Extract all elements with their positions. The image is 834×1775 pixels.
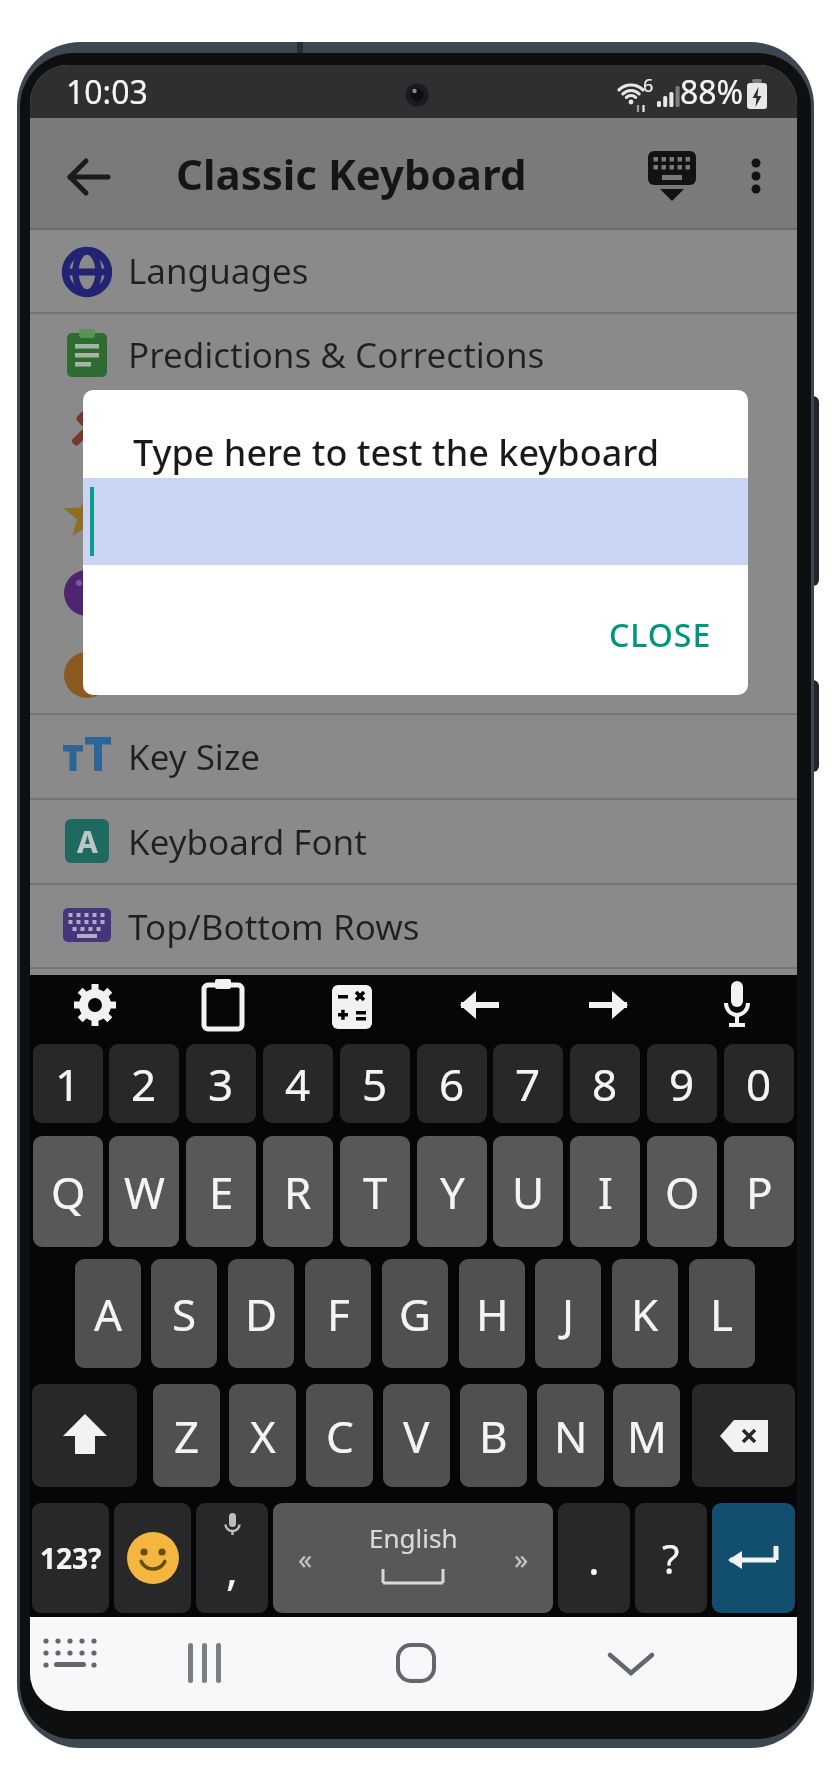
button[interactable]: .	[558, 1503, 630, 1613]
staticText: D	[245, 1284, 278, 1344]
button[interactable]: Y	[417, 1136, 487, 1247]
staticText: R	[284, 1162, 312, 1222]
button[interactable]: 6	[417, 1044, 487, 1123]
button[interactable]: N	[537, 1384, 604, 1487]
button[interactable]: R	[263, 1136, 333, 1247]
staticText: 6	[643, 73, 654, 93]
staticText: 10:03	[66, 70, 148, 114]
staticText: Z	[174, 1406, 200, 1466]
button[interactable]	[380, 1631, 450, 1697]
staticText: Predictions & Corrections	[128, 331, 545, 379]
button[interactable]	[30, 800, 797, 883]
staticText: »	[514, 1539, 529, 1577]
staticText: Key Size	[128, 733, 261, 781]
staticText: O	[665, 1162, 700, 1222]
button[interactable]	[636, 143, 736, 213]
button[interactable]	[32, 1384, 137, 1487]
button[interactable]: G	[382, 1259, 448, 1368]
staticText: T	[363, 1162, 388, 1222]
button[interactable]: CLOSE	[595, 605, 725, 665]
button[interactable]: ,	[196, 1503, 268, 1613]
button[interactable]: 0	[724, 1044, 794, 1123]
staticText: G	[399, 1284, 432, 1344]
button[interactable]	[30, 230, 797, 312]
button[interactable]: 7	[493, 1044, 563, 1123]
button[interactable]	[30, 885, 797, 968]
staticText: English	[369, 1520, 458, 1555]
button[interactable]: E	[186, 1136, 256, 1247]
button[interactable]: V	[383, 1384, 450, 1487]
button[interactable]: T	[340, 1136, 410, 1247]
button[interactable]	[712, 1503, 795, 1613]
button[interactable]: 123?	[32, 1503, 109, 1613]
button[interactable]: 1	[33, 1044, 103, 1123]
staticText: F	[327, 1284, 350, 1344]
button[interactable]: M	[613, 1384, 680, 1487]
button[interactable]	[30, 715, 797, 798]
button[interactable]: A	[75, 1259, 141, 1368]
button[interactable]	[576, 975, 640, 1039]
button[interactable]	[114, 1503, 191, 1613]
button[interactable]	[30, 314, 797, 395]
button[interactable]: W	[109, 1136, 179, 1247]
button[interactable]: U	[493, 1136, 563, 1247]
staticText: X	[250, 1406, 276, 1466]
button[interactable]: H	[459, 1259, 525, 1368]
button[interactable]	[62, 150, 116, 204]
button[interactable]: D	[228, 1259, 294, 1368]
staticText: 4	[285, 1054, 311, 1114]
button[interactable]: Z	[153, 1384, 220, 1487]
button[interactable]	[732, 143, 782, 213]
button[interactable]: 3	[186, 1044, 256, 1123]
staticText: C	[326, 1406, 354, 1466]
button[interactable]: «	[273, 1503, 553, 1613]
staticText: Classic Keyboard	[176, 145, 527, 202]
staticText: Y	[440, 1162, 465, 1222]
button[interactable]: I	[570, 1136, 640, 1247]
staticText: K	[631, 1284, 659, 1344]
staticText: 88%	[680, 70, 744, 114]
staticText: 3	[208, 1054, 234, 1114]
button[interactable]: Q	[33, 1136, 103, 1247]
staticText: 7	[515, 1054, 541, 1114]
button[interactable]	[38, 1631, 108, 1697]
staticText: J	[562, 1284, 575, 1344]
button[interactable]	[63, 975, 127, 1039]
staticText: S	[172, 1284, 197, 1344]
button[interactable]: C	[306, 1384, 373, 1487]
button[interactable]: B	[460, 1384, 527, 1487]
button[interactable]	[705, 975, 769, 1039]
staticText: N	[554, 1406, 588, 1466]
staticText: L	[710, 1284, 734, 1344]
staticText: W	[124, 1162, 165, 1222]
button[interactable]	[191, 975, 255, 1039]
button[interactable]	[83, 478, 748, 565]
button[interactable]: K	[612, 1259, 678, 1368]
staticText: A	[94, 1284, 123, 1344]
staticText: 5	[362, 1054, 388, 1114]
button[interactable]: O	[647, 1136, 717, 1247]
button[interactable]: X	[229, 1384, 296, 1487]
staticText: A	[77, 821, 98, 862]
button[interactable]	[320, 975, 384, 1039]
button[interactable]: 2	[109, 1044, 179, 1123]
button[interactable]	[448, 975, 512, 1039]
button[interactable]	[588, 1631, 678, 1697]
button[interactable]: ?	[635, 1503, 707, 1613]
button[interactable]: 5	[340, 1044, 410, 1123]
button[interactable]: J	[535, 1259, 601, 1368]
staticText: Keyboard Font	[128, 818, 367, 866]
button[interactable]: S	[151, 1259, 217, 1368]
button[interactable]: F	[305, 1259, 371, 1368]
button[interactable]: L	[689, 1259, 755, 1368]
button[interactable]: P	[724, 1136, 794, 1247]
staticText: Top/Bottom Rows	[128, 903, 420, 951]
staticText: Type here to test the keyboard	[133, 428, 660, 477]
button[interactable]	[692, 1384, 795, 1487]
button[interactable]: 8	[570, 1044, 640, 1123]
button[interactable]: 4	[263, 1044, 333, 1123]
button[interactable]: 9	[647, 1044, 717, 1123]
staticText: P	[746, 1162, 773, 1222]
staticText: 123?	[40, 1539, 102, 1577]
button[interactable]	[160, 1631, 250, 1697]
